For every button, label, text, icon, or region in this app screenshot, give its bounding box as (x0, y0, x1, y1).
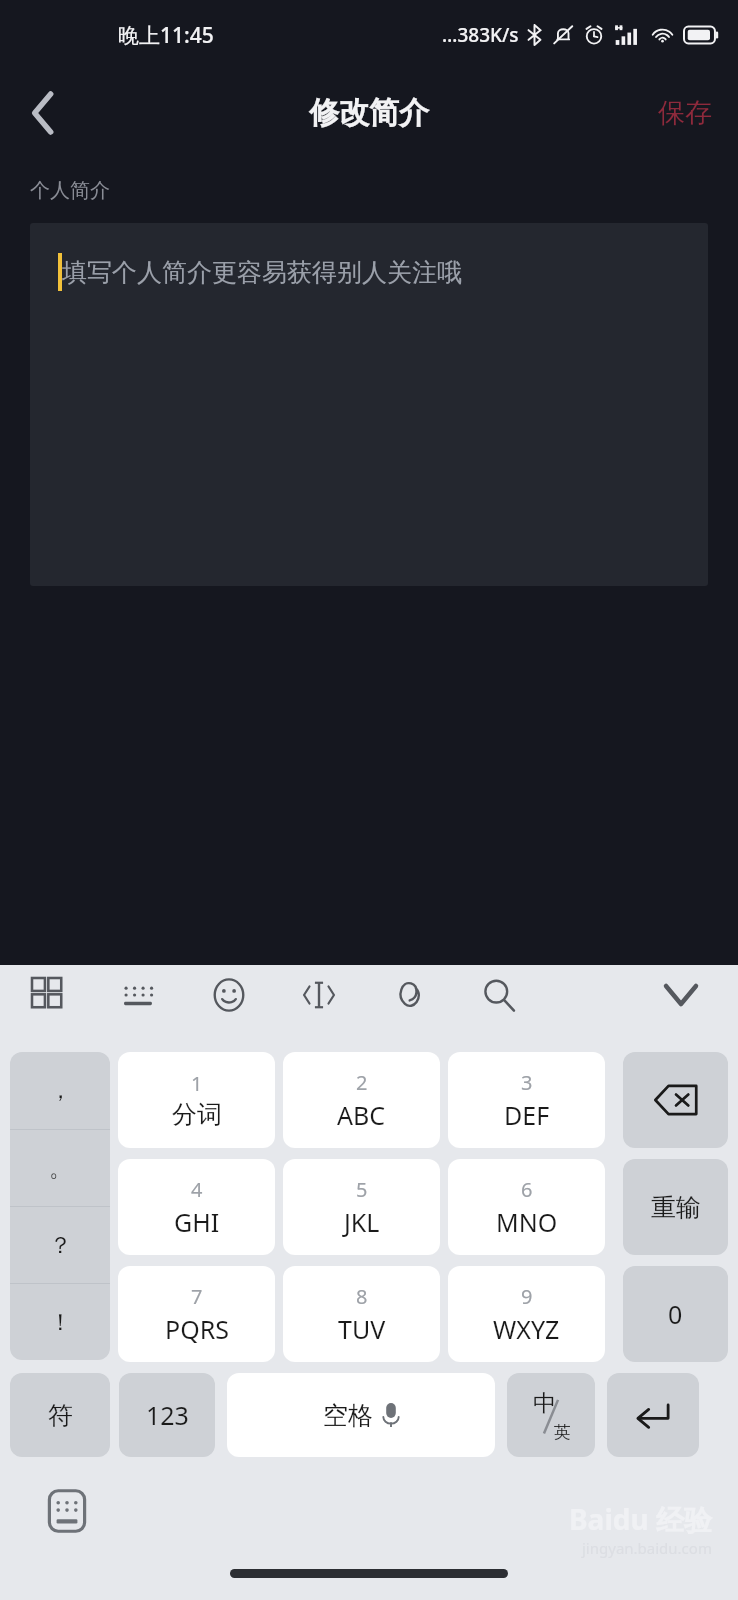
staticText: ？ (49, 1231, 72, 1260)
staticText: 9 (521, 1283, 533, 1310)
staticText: 2 (356, 1069, 368, 1096)
staticText: 符 (48, 1400, 73, 1431)
button[interactable]: Clipboard (382, 968, 436, 1022)
button[interactable]: Back (0, 70, 86, 156)
button[interactable]: 4 (118, 1159, 275, 1255)
staticText: 1 (191, 1070, 203, 1097)
staticText: 4 (191, 1176, 203, 1203)
button[interactable]: 重输 (623, 1159, 728, 1255)
staticText: ！ (49, 1308, 72, 1337)
staticText: PQRS (165, 1312, 229, 1346)
button[interactable]: 9 (448, 1266, 605, 1362)
staticText: MNO (496, 1205, 558, 1239)
button[interactable]: Backspace (623, 1052, 728, 1148)
staticText: 123 (146, 1398, 189, 1432)
button[interactable]: Enter (607, 1373, 699, 1457)
staticText: 7 (191, 1283, 203, 1310)
staticText: 修改简介 (309, 94, 429, 132)
staticText: …383K/s (442, 22, 519, 48)
staticText: 3 (521, 1069, 533, 1096)
button[interactable]: 2 (283, 1052, 440, 1148)
button[interactable]: ！ (10, 1284, 110, 1360)
staticText: 重输 (651, 1192, 701, 1223)
staticText: 分词 (172, 1099, 222, 1130)
staticText: ABC (337, 1098, 386, 1132)
staticText: 8 (356, 1283, 368, 1310)
button[interactable]: Emoji (202, 968, 256, 1022)
staticText: 个人简介 (30, 178, 110, 203)
staticText: 5 (356, 1176, 368, 1203)
button[interactable]: 0 (623, 1266, 728, 1362)
staticText: DEF (504, 1098, 550, 1132)
staticText: ， (49, 1076, 72, 1105)
staticText: GHI (174, 1205, 220, 1239)
button[interactable]: 1 (118, 1052, 275, 1148)
staticText: WXYZ (493, 1312, 560, 1346)
button[interactable]: 中 (507, 1373, 595, 1457)
staticText: 填写个人简介更容易获得别人关注哦 (62, 257, 462, 288)
staticText: 6 (521, 1176, 533, 1203)
button[interactable]: Cursor control (292, 968, 346, 1022)
button[interactable]: Keyboard layout (112, 968, 166, 1022)
staticText: 保存 (658, 96, 712, 130)
button[interactable]: Search (472, 968, 526, 1022)
button[interactable]: 8 (283, 1266, 440, 1362)
button[interactable]: 123 (119, 1373, 215, 1457)
button[interactable]: 填写个人简介更容易获得别人关注哦 (30, 223, 708, 586)
button[interactable]: Switch keyboard (40, 1484, 94, 1538)
button[interactable]: 。 (10, 1130, 110, 1206)
button[interactable]: 3 (448, 1052, 605, 1148)
button[interactable]: 保存 (632, 82, 738, 144)
staticText: 。 (49, 1154, 72, 1183)
staticText: Baidu 经验 (569, 1500, 712, 1538)
button[interactable]: 空格 (227, 1373, 495, 1457)
staticText: 空格 (323, 1400, 373, 1431)
staticText: 晚上11:45 (118, 21, 214, 50)
staticText: 0 (668, 1297, 683, 1331)
staticText: jingyan.baidu.com (582, 1538, 712, 1558)
button[interactable]: 符 (10, 1373, 110, 1457)
staticText: 英 (554, 1422, 571, 1443)
button[interactable]: 7 (118, 1266, 275, 1362)
button[interactable]: Hide keyboard (654, 968, 708, 1022)
button[interactable]: 6 (448, 1159, 605, 1255)
button[interactable]: 5 (283, 1159, 440, 1255)
staticText: JKL (344, 1205, 380, 1239)
button[interactable]: ？ (10, 1207, 110, 1283)
staticText: TUV (338, 1312, 386, 1346)
button[interactable]: ， (10, 1052, 110, 1129)
staticText: 中 (533, 1389, 556, 1418)
button[interactable]: Keyboard modes (22, 968, 76, 1022)
